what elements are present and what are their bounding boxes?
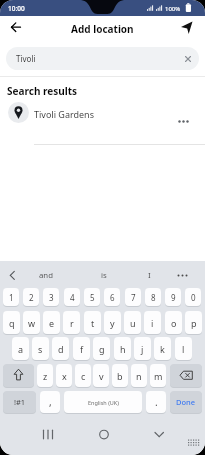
staticText: Add location — [71, 22, 134, 36]
button[interactable]: is — [84, 264, 124, 286]
button[interactable]: , — [40, 391, 60, 413]
staticText: 3 — [49, 292, 54, 303]
button[interactable] — [174, 114, 192, 128]
staticText: u — [130, 317, 136, 329]
staticText: Done — [176, 397, 196, 407]
button[interactable]: . — [146, 391, 166, 413]
staticText: !#1 — [14, 397, 26, 407]
staticText: r — [70, 317, 74, 329]
button[interactable]: t — [84, 311, 101, 334]
button[interactable] — [7, 18, 26, 37]
button[interactable]: g — [93, 337, 110, 360]
staticText: n — [136, 370, 142, 382]
button[interactable]: !#1 — [3, 391, 36, 413]
button[interactable]: n — [131, 364, 147, 387]
button[interactable]: a — [12, 337, 29, 360]
button[interactable]: English (UK) — [64, 391, 142, 413]
staticText: . — [155, 395, 158, 409]
button[interactable]: 7 — [125, 288, 141, 306]
button[interactable]: 5 — [84, 288, 100, 306]
button[interactable]: s — [32, 337, 49, 360]
button[interactable]: 3 — [43, 288, 59, 306]
button[interactable]: i — [144, 311, 161, 334]
button[interactable]: Done — [170, 391, 202, 413]
staticText: a — [18, 343, 24, 355]
button[interactable]: k — [154, 337, 171, 360]
button[interactable]: h — [114, 337, 131, 360]
staticText: h — [120, 343, 126, 355]
button[interactable]: and — [26, 264, 66, 286]
staticText: f — [80, 343, 84, 355]
button[interactable]: 9 — [165, 288, 181, 306]
staticText: is — [101, 270, 107, 281]
button[interactable]: q — [3, 311, 20, 334]
button[interactable]: f — [73, 337, 90, 360]
staticText: d — [58, 343, 64, 355]
staticText: 10:00 — [8, 4, 25, 13]
staticText: 8 — [151, 292, 156, 303]
button[interactable]: 0 — [185, 288, 201, 306]
button[interactable]: Tivoli — [6, 47, 199, 70]
staticText: k — [160, 343, 165, 355]
button[interactable]: j — [134, 337, 151, 360]
staticText: t — [91, 317, 95, 329]
button[interactable] — [172, 264, 193, 286]
button[interactable]: 6 — [104, 288, 120, 306]
button[interactable]: d — [52, 337, 69, 360]
staticText: w — [28, 317, 36, 329]
staticText: x — [62, 370, 67, 382]
button[interactable]: 2 — [23, 288, 39, 306]
button[interactable]: w — [23, 311, 40, 334]
button[interactable]: 1 — [3, 288, 19, 306]
button[interactable]: 8 — [145, 288, 161, 306]
button[interactable]: z — [37, 364, 53, 387]
button[interactable]: u — [124, 311, 141, 334]
staticText: 2 — [29, 292, 34, 303]
staticText: q — [9, 317, 15, 329]
staticText: j — [141, 343, 144, 355]
button[interactable]: y — [104, 311, 121, 334]
staticText: 9 — [171, 292, 176, 303]
staticText: c — [81, 370, 86, 382]
staticText: , — [49, 395, 52, 409]
staticText: i — [151, 317, 154, 329]
staticText: 0 — [191, 292, 196, 303]
button[interactable]: c — [75, 364, 91, 387]
staticText: 6 — [110, 292, 115, 303]
staticText: and — [39, 270, 53, 281]
staticText: Tivoli — [16, 53, 36, 64]
button[interactable] — [3, 364, 34, 387]
staticText: v — [99, 370, 104, 382]
staticText: I — [148, 270, 151, 281]
button[interactable] — [170, 364, 202, 387]
button[interactable]: b — [112, 364, 128, 387]
button[interactable]: x — [56, 364, 72, 387]
button[interactable]: p — [185, 311, 202, 334]
staticText: b — [117, 370, 123, 382]
staticText: 1 — [9, 292, 14, 303]
staticText: Search results — [7, 84, 78, 98]
button[interactable] — [178, 18, 198, 38]
staticText: m — [154, 370, 163, 382]
staticText: y — [110, 317, 115, 329]
staticText: l — [182, 343, 185, 355]
staticText: g — [99, 343, 105, 355]
button[interactable]: m — [150, 364, 166, 387]
button[interactable] — [0, 261, 26, 287]
button[interactable]: r — [63, 311, 80, 334]
staticText: 7 — [131, 292, 136, 303]
staticText: 100% — [165, 5, 181, 13]
button[interactable]: 4 — [64, 288, 80, 306]
staticText: e — [49, 317, 55, 329]
button[interactable]: Tivoli Gardens — [0, 100, 205, 128]
button[interactable]: e — [43, 311, 60, 334]
staticText: z — [43, 370, 48, 382]
staticText: o — [171, 317, 177, 329]
button[interactable]: l — [175, 337, 192, 360]
staticText: 5 — [90, 292, 95, 303]
staticText: p — [191, 317, 197, 329]
button[interactable]: I — [129, 264, 169, 286]
button[interactable]: o — [165, 311, 182, 334]
button[interactable]: v — [93, 364, 109, 387]
staticText: Tivoli Gardens — [34, 108, 94, 120]
